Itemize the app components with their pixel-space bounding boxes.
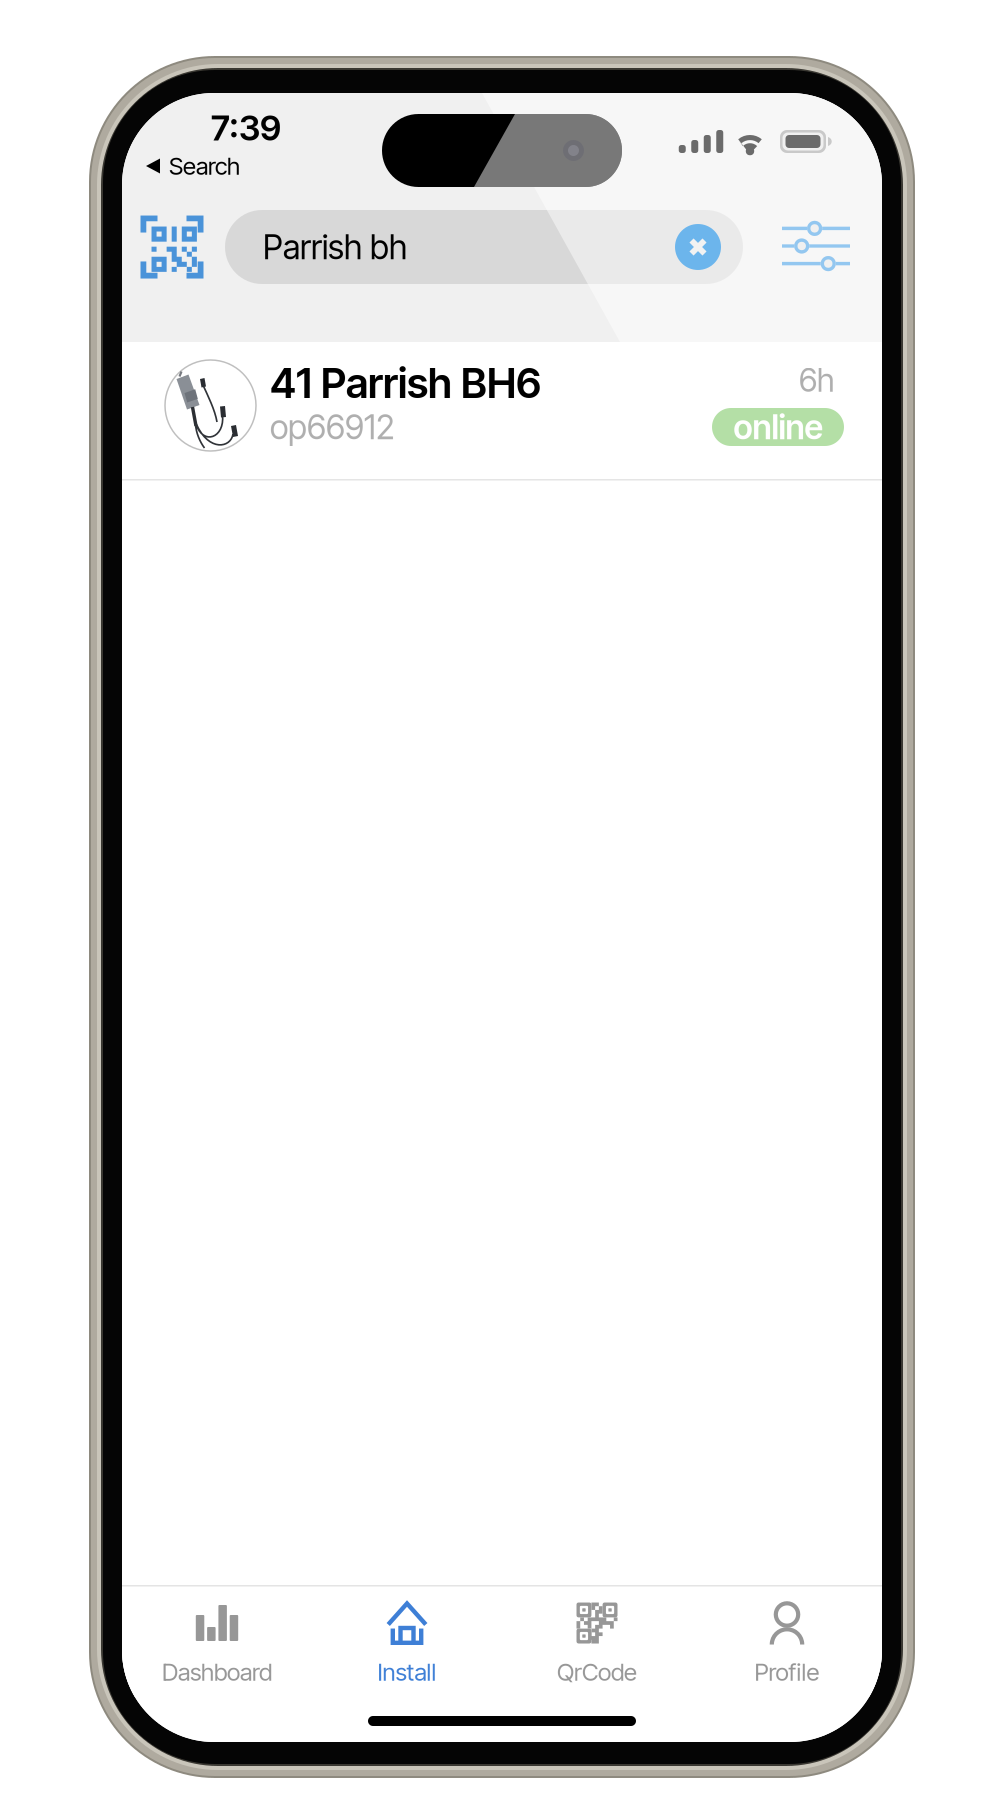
- button[interactable]: 41 Parrish BH6: [122, 342, 882, 481]
- button[interactable]: Scan QR code: [133, 210, 211, 284]
- staticText: 7:39: [211, 107, 281, 149]
- button[interactable]: Filter: [777, 209, 855, 283]
- staticText: online: [733, 407, 822, 447]
- button[interactable]: Dashboard: [122, 1587, 312, 1697]
- staticText: 41 Parrish BH6: [270, 358, 541, 408]
- staticText: Install: [377, 1657, 436, 1686]
- staticText: Search: [169, 151, 240, 180]
- staticText: Dashboard: [162, 1657, 272, 1686]
- staticText: op66912: [270, 407, 395, 447]
- staticText: Parrish bh: [263, 227, 407, 267]
- button[interactable]: Install: [312, 1587, 502, 1697]
- button[interactable]: Search: [146, 154, 240, 178]
- button[interactable]: Profile: [692, 1587, 882, 1697]
- staticText: QrCode: [557, 1657, 637, 1686]
- button[interactable]: Parrish bh: [225, 210, 743, 284]
- button[interactable]: QrCode: [502, 1587, 692, 1697]
- staticText: 6h: [799, 361, 834, 399]
- staticText: Profile: [754, 1657, 819, 1686]
